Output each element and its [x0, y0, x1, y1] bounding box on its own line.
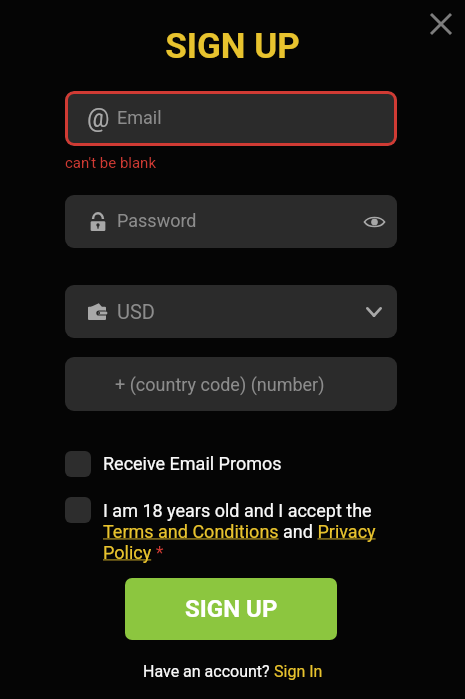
- button[interactable]: @: [65, 91, 397, 146]
- button[interactable]: Close: [421, 4, 461, 44]
- staticText: Sign In: [274, 662, 323, 681]
- staticText: Have an account?: [143, 662, 274, 681]
- staticText: Receive Email Promos: [103, 453, 282, 474]
- button[interactable]: + (country code) (number): [65, 357, 397, 411]
- staticText: + (country code) (number): [115, 374, 325, 395]
- button[interactable]: SIGN UP: [125, 578, 337, 640]
- staticText: Email: [117, 107, 162, 128]
- button[interactable]: Sign In: [274, 662, 323, 681]
- staticText: I am 18 years old and I accept the Terms…: [103, 500, 389, 563]
- button[interactable]: Receive Email Promos: [65, 451, 282, 477]
- staticText: can't be blank: [65, 154, 156, 172]
- staticText: SIGN UP: [0, 26, 465, 67]
- button[interactable]: I am 18 years old and I accept the Terms…: [65, 497, 389, 560]
- staticText: @: [87, 104, 110, 133]
- staticText: USD: [117, 300, 155, 323]
- staticText: SIGN UP: [185, 595, 278, 623]
- button[interactable]: Password: [65, 195, 397, 248]
- button[interactable]: Show password: [361, 209, 387, 235]
- button[interactable]: USD: [65, 285, 397, 338]
- staticText: Password: [117, 210, 197, 231]
